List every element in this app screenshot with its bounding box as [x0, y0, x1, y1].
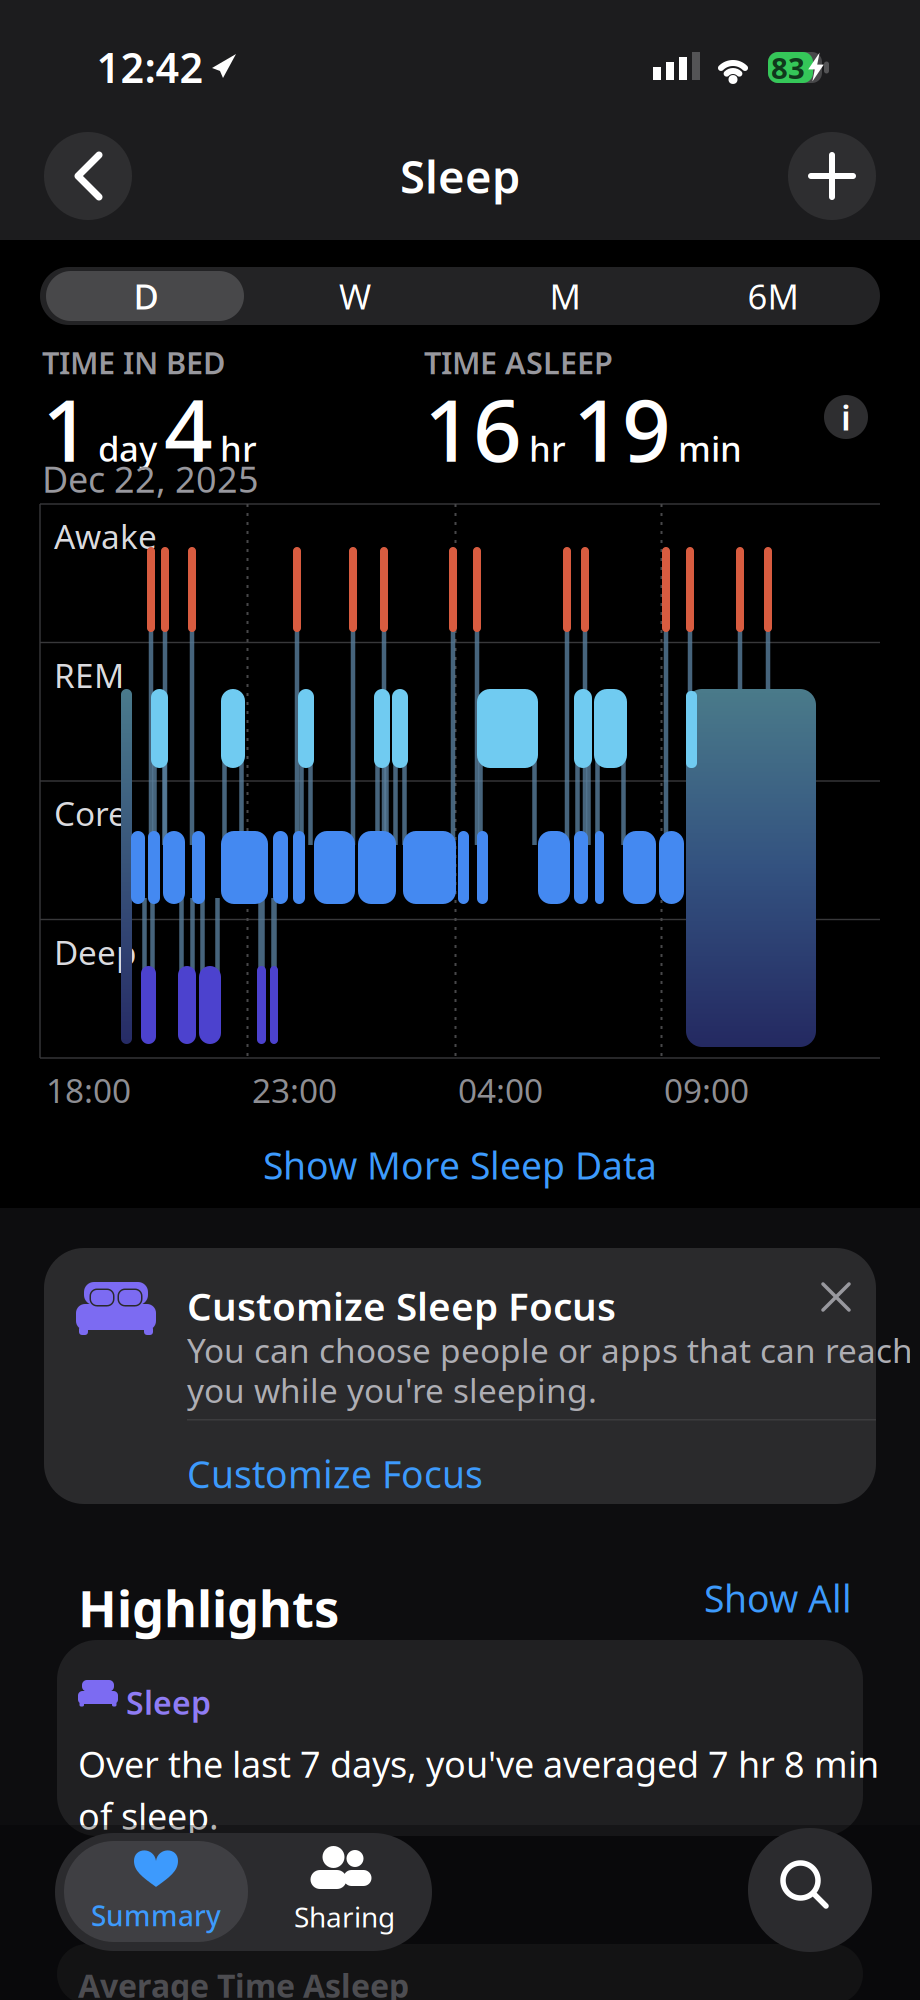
- staticText: 83: [771, 48, 805, 87]
- staticText: 04:00: [458, 1068, 543, 1112]
- staticText: Sleep: [126, 1681, 211, 1723]
- staticText: Highlights: [78, 1574, 339, 1641]
- staticText: 23:00: [252, 1068, 337, 1112]
- button[interactable]: Show All: [704, 1573, 852, 1623]
- staticText: 1: [42, 372, 91, 485]
- staticText: of sleep.: [78, 1792, 219, 1840]
- staticText: W: [339, 273, 371, 319]
- staticText: i: [841, 394, 851, 440]
- staticText: 18:00: [46, 1068, 131, 1112]
- staticText: Sharing: [294, 1898, 395, 1935]
- button[interactable]: 6M: [747, 273, 798, 319]
- staticText: Show More Sleep Data: [263, 1140, 657, 1190]
- button[interactable]: [46, 271, 244, 321]
- staticText: Awake: [54, 514, 157, 558]
- staticText: Customize Focus: [187, 1449, 483, 1499]
- staticText: You can choose people or apps that can r…: [187, 1328, 913, 1372]
- staticText: 09:00: [664, 1068, 749, 1112]
- staticText: hr: [220, 425, 257, 471]
- button[interactable]: [818, 1279, 854, 1315]
- staticText: Summary: [91, 1897, 221, 1934]
- staticText: 16: [424, 372, 522, 485]
- staticText: 6M: [747, 273, 798, 319]
- staticText: you while you're sleeping.: [187, 1368, 597, 1412]
- staticText: Sleep: [400, 146, 520, 206]
- button[interactable]: [788, 132, 876, 220]
- staticText: Dec 22, 2025: [42, 455, 259, 503]
- staticText: min: [678, 425, 742, 471]
- staticText: Average Time Asleep: [78, 1964, 409, 2000]
- staticText: Customize Sleep Focus: [187, 1280, 616, 1331]
- staticText: 12:42: [96, 40, 203, 94]
- staticText: 4: [164, 372, 213, 485]
- staticText: D: [133, 273, 158, 319]
- staticText: Show All: [704, 1573, 852, 1623]
- staticText: day: [98, 425, 157, 471]
- staticText: TIME IN BED: [42, 342, 225, 383]
- staticText: 19: [573, 372, 671, 485]
- button[interactable]: [748, 1828, 872, 1952]
- staticText: Over the last 7 days, you've averaged 7 …: [78, 1740, 879, 1788]
- button[interactable]: [44, 132, 132, 220]
- button[interactable]: Show More Sleep Data: [263, 1140, 657, 1190]
- staticText: Core: [54, 791, 127, 835]
- staticText: Deep: [54, 930, 137, 974]
- staticText: TIME ASLEEP: [424, 342, 613, 383]
- button[interactable]: D: [133, 273, 158, 319]
- staticText: REM: [54, 653, 124, 697]
- button[interactable]: Sharing: [294, 1846, 395, 1935]
- button[interactable]: i: [824, 394, 868, 440]
- button[interactable]: W: [339, 273, 371, 319]
- button[interactable]: Summary: [64, 1841, 248, 1942]
- button[interactable]: [57, 1640, 863, 1836]
- button[interactable]: M: [549, 273, 580, 319]
- staticText: M: [549, 273, 580, 319]
- button[interactable]: Customize Focus: [187, 1449, 483, 1499]
- staticText: hr: [529, 425, 566, 471]
